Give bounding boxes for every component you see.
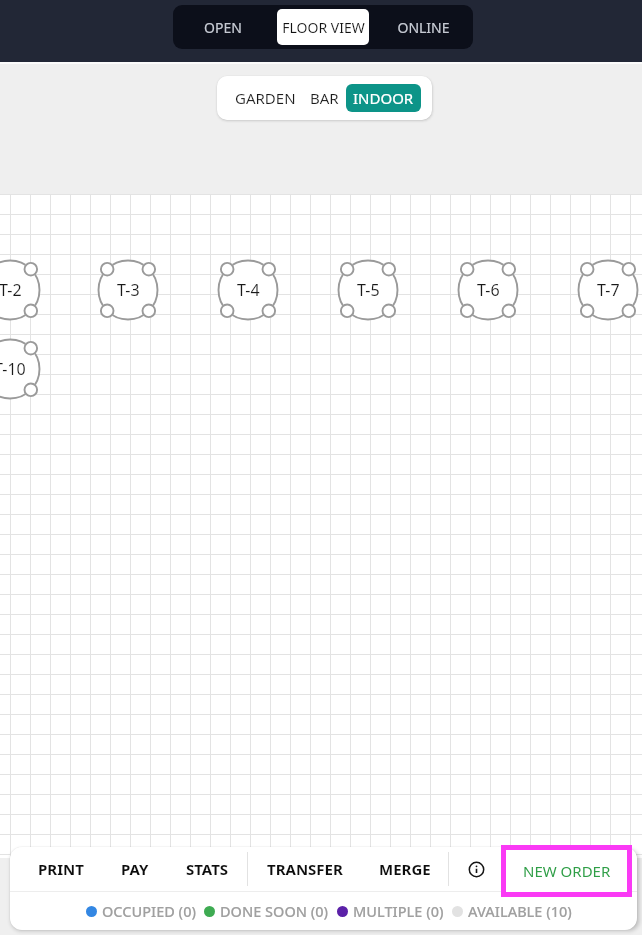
staticText: OCCUPIED (0) [102, 901, 196, 921]
staticText: T-3 [117, 279, 140, 301]
button[interactable]: OCCUPIED (0) [82, 896, 200, 926]
staticText: PRINT [38, 859, 84, 879]
button[interactable]: MULTIPLE (0) [333, 896, 448, 926]
button[interactable]: BAR [303, 84, 346, 112]
button[interactable]: GARDEN [228, 84, 303, 112]
staticText: DONE SOON (0) [220, 901, 329, 921]
staticText: OPEN [204, 18, 242, 37]
button[interactable]: ONLINE [377, 9, 469, 45]
button[interactable]: T-4 [208, 250, 288, 330]
button[interactable]: DONE SOON (0) [200, 896, 333, 926]
button[interactable]: PRINT [20, 847, 102, 891]
staticText: AVAILABLE (10) [468, 901, 572, 921]
staticText: STATS [186, 859, 229, 879]
staticText: BAR [310, 88, 339, 108]
button[interactable]: TRANSFER [248, 847, 362, 891]
staticText: T-2 [0, 279, 22, 301]
staticText: MULTIPLE (0) [353, 901, 444, 921]
button[interactable]: OPEN [177, 9, 269, 45]
staticText: T-6 [477, 279, 500, 301]
button[interactable]: INDOOR [346, 84, 421, 112]
button[interactable]: T-10 [0, 329, 50, 409]
staticText: ONLINE [397, 18, 450, 37]
staticText: PAY [121, 859, 149, 879]
staticText: INDOOR [353, 88, 414, 108]
button[interactable]: STATS [168, 847, 247, 891]
staticText: T-10 [0, 358, 26, 380]
button[interactable]: FLOOR VIEW [277, 9, 369, 45]
staticText: MERGE [379, 859, 431, 879]
button[interactable]: Info [449, 847, 504, 891]
button[interactable]: T-5 [328, 250, 408, 330]
button[interactable]: T-7 [568, 250, 642, 330]
button[interactable]: T-3 [88, 250, 168, 330]
staticText: TRANSFER [267, 859, 343, 879]
staticText: T-7 [597, 279, 620, 301]
staticText: NEW ORDER [523, 861, 611, 881]
button[interactable]: T-2 [0, 250, 50, 330]
button[interactable]: T-6 [448, 250, 528, 330]
button[interactable]: MERGE [362, 847, 448, 891]
staticText: T-4 [237, 279, 260, 301]
staticText: T-5 [357, 279, 380, 301]
staticText: GARDEN [235, 88, 296, 108]
button[interactable]: AVAILABLE (10) [448, 896, 576, 926]
staticText: FLOOR VIEW [282, 18, 365, 37]
button[interactable]: NEW ORDER [501, 845, 632, 897]
button[interactable]: PAY [102, 847, 168, 891]
